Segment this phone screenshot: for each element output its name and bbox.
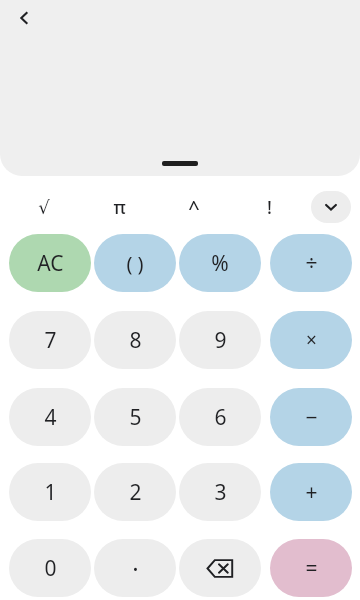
button[interactable]: AC — [9, 234, 91, 292]
button[interactable]: 0 — [9, 539, 91, 597]
staticText: 5 — [129, 403, 142, 432]
staticText: 8 — [129, 326, 142, 355]
button[interactable]: √ — [18, 185, 70, 229]
button[interactable]: 2 — [94, 463, 176, 521]
button[interactable]: 1 — [9, 463, 91, 521]
staticText: 3 — [214, 478, 227, 507]
staticText: · — [132, 552, 139, 585]
button[interactable]: 6 — [179, 388, 261, 446]
button[interactable]: 8 — [94, 311, 176, 369]
button[interactable]: ^ — [168, 185, 220, 229]
button[interactable]: 4 — [9, 388, 91, 446]
staticText: = — [305, 554, 318, 583]
button[interactable]: 3 — [179, 463, 261, 521]
button[interactable]: = — [270, 539, 352, 597]
staticText: + — [305, 478, 318, 507]
staticText: 7 — [44, 326, 57, 355]
button[interactable]: 5 — [94, 388, 176, 446]
staticText: − — [305, 403, 318, 432]
button[interactable]: ! — [243, 185, 295, 229]
button[interactable]: · — [94, 539, 176, 597]
staticText: ^ — [188, 194, 200, 221]
button[interactable]: Expand functions — [311, 191, 351, 223]
staticText: 6 — [214, 403, 227, 432]
button[interactable]: + — [270, 463, 352, 521]
button[interactable]: 9 — [179, 311, 261, 369]
staticText: 2 — [129, 478, 142, 507]
button[interactable]: % — [179, 234, 261, 292]
staticText: 1 — [44, 478, 57, 507]
staticText: 0 — [44, 554, 57, 583]
staticText: % — [211, 249, 229, 278]
staticText: AC — [37, 249, 64, 278]
button[interactable]: − — [270, 388, 352, 446]
button[interactable]: Back — [6, 0, 42, 36]
staticText: √ — [38, 197, 50, 218]
staticText: π — [113, 195, 126, 220]
staticText: × — [306, 327, 317, 353]
button[interactable]: 7 — [9, 311, 91, 369]
button[interactable]: π — [93, 185, 145, 229]
button[interactable]: × — [270, 311, 352, 369]
staticText: 9 — [214, 326, 227, 355]
button[interactable]: ÷ — [270, 234, 352, 292]
staticText: ( ) — [126, 250, 144, 277]
staticText: ! — [267, 195, 272, 220]
staticText: 4 — [44, 403, 57, 432]
staticText: ÷ — [305, 249, 318, 278]
button[interactable]: Backspace — [179, 539, 261, 597]
button[interactable]: ( ) — [94, 234, 176, 292]
